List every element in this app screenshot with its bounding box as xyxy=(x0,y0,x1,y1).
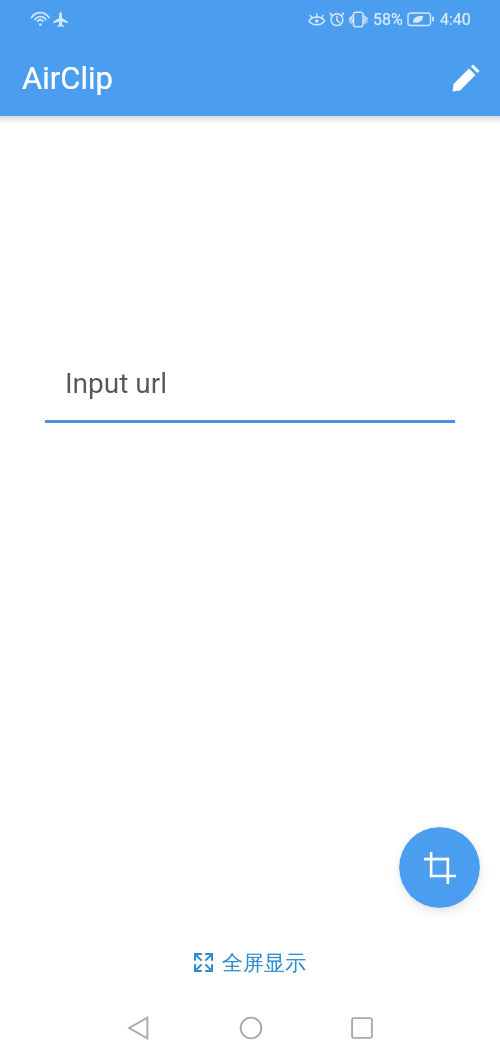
button[interactable]: Input url xyxy=(45,352,455,423)
button[interactable]: Recents xyxy=(334,1000,389,1055)
button[interactable]: 全屏显示 xyxy=(194,949,307,975)
button[interactable]: Edit xyxy=(441,54,489,102)
staticText: 全屏显示 xyxy=(222,950,306,976)
staticText: AirClip xyxy=(22,60,113,96)
staticText: 4:40 xyxy=(440,10,471,29)
button[interactable]: Crop xyxy=(399,827,480,908)
button[interactable]: Home xyxy=(223,1000,278,1055)
staticText: 58% xyxy=(373,10,403,29)
staticText: Input url xyxy=(65,367,168,400)
button[interactable]: Back xyxy=(111,1000,166,1055)
